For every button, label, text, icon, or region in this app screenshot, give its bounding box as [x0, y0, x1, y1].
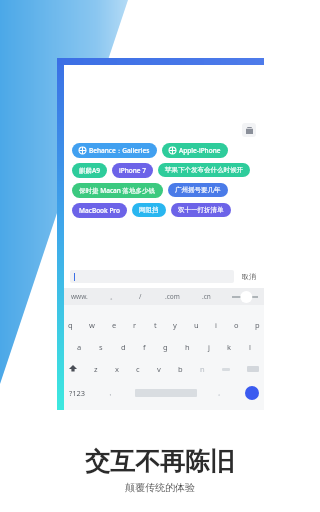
button[interactable]: 。 — [109, 293, 118, 301]
button[interactable]: Shift — [69, 365, 77, 373]
button[interactable]: ?123 — [69, 388, 86, 398]
button[interactable]: 保时捷 Macan 落地多少钱 — [72, 183, 163, 198]
staticText: iPhone 7 — [119, 166, 146, 175]
staticText: k — [227, 342, 232, 352]
staticText: s — [99, 342, 103, 352]
button[interactable]: iPhone 7 — [112, 163, 153, 178]
staticText: 。 — [110, 293, 117, 301]
button[interactable]: .com — [164, 292, 181, 301]
button[interactable]: 麒麟A9 — [72, 163, 107, 178]
staticText: ， — [107, 389, 113, 397]
staticText: 网阻挡 — [139, 206, 159, 214]
staticText: 保时捷 Macan 落地多少钱 — [79, 186, 156, 195]
staticText: MacBook Pro — [79, 206, 120, 215]
staticText: u — [194, 320, 199, 330]
staticText: Behance：Galleries — [89, 146, 150, 155]
staticText: .com — [165, 292, 180, 301]
staticText: n — [200, 364, 205, 374]
staticText: c — [136, 364, 140, 374]
staticText: z — [94, 364, 98, 374]
staticText: a — [77, 342, 82, 352]
staticText: q — [68, 320, 73, 330]
staticText: f — [143, 342, 146, 352]
staticText: 交互不再陈旧 — [85, 446, 235, 477]
button[interactable]: Toggle — [232, 291, 258, 303]
staticText: Apple-iPhone — [179, 146, 221, 155]
button[interactable]: / — [138, 292, 143, 301]
staticText: 取消 — [242, 272, 256, 281]
staticText: d — [121, 342, 126, 352]
button[interactable]: Search — [245, 386, 259, 400]
staticText: www. — [71, 292, 88, 301]
button[interactable]: 取消 — [240, 272, 258, 281]
button[interactable]: Apple-iPhone — [162, 143, 228, 158]
staticText: p — [255, 320, 260, 330]
button[interactable]: www. — [70, 292, 89, 301]
staticText: g — [163, 342, 168, 352]
button[interactable]: 苹果下个发布会什么时候开 — [158, 163, 250, 177]
staticText: x — [115, 364, 119, 374]
button[interactable]: 广州摇号要几年 — [168, 183, 228, 197]
staticText: i — [215, 320, 217, 330]
staticText: 麒麟A9 — [79, 166, 100, 175]
button[interactable]: .cn — [201, 292, 212, 301]
button[interactable]: Clear history — [242, 123, 256, 137]
staticText: v — [157, 364, 161, 374]
staticText: e — [112, 320, 117, 330]
staticText: l — [249, 342, 251, 352]
staticText: y — [173, 320, 177, 330]
staticText: b — [178, 364, 183, 374]
staticText: h — [185, 342, 190, 352]
button[interactable]: Behance：Galleries — [72, 143, 157, 158]
staticText: j — [208, 342, 210, 352]
staticText: 双十一打折清单 — [178, 206, 224, 214]
staticText: / — [139, 292, 142, 301]
staticText: 颠覆传统的体验 — [125, 481, 195, 494]
staticText: .cn — [202, 292, 211, 301]
staticText: o — [234, 320, 239, 330]
button[interactable]: MacBook Pro — [72, 203, 127, 218]
button[interactable]: 网阻挡 — [132, 203, 166, 217]
staticText: t — [154, 320, 157, 330]
staticText: 苹果下个发布会什么时候开 — [165, 166, 243, 174]
staticText: r — [133, 320, 137, 330]
staticText: 广州摇号要几年 — [175, 186, 221, 194]
button[interactable] — [70, 270, 234, 283]
staticText: ?123 — [69, 388, 86, 398]
staticText: 。 — [218, 389, 224, 397]
button[interactable]: 双十一打折清单 — [171, 203, 231, 217]
staticText: w — [89, 320, 95, 330]
